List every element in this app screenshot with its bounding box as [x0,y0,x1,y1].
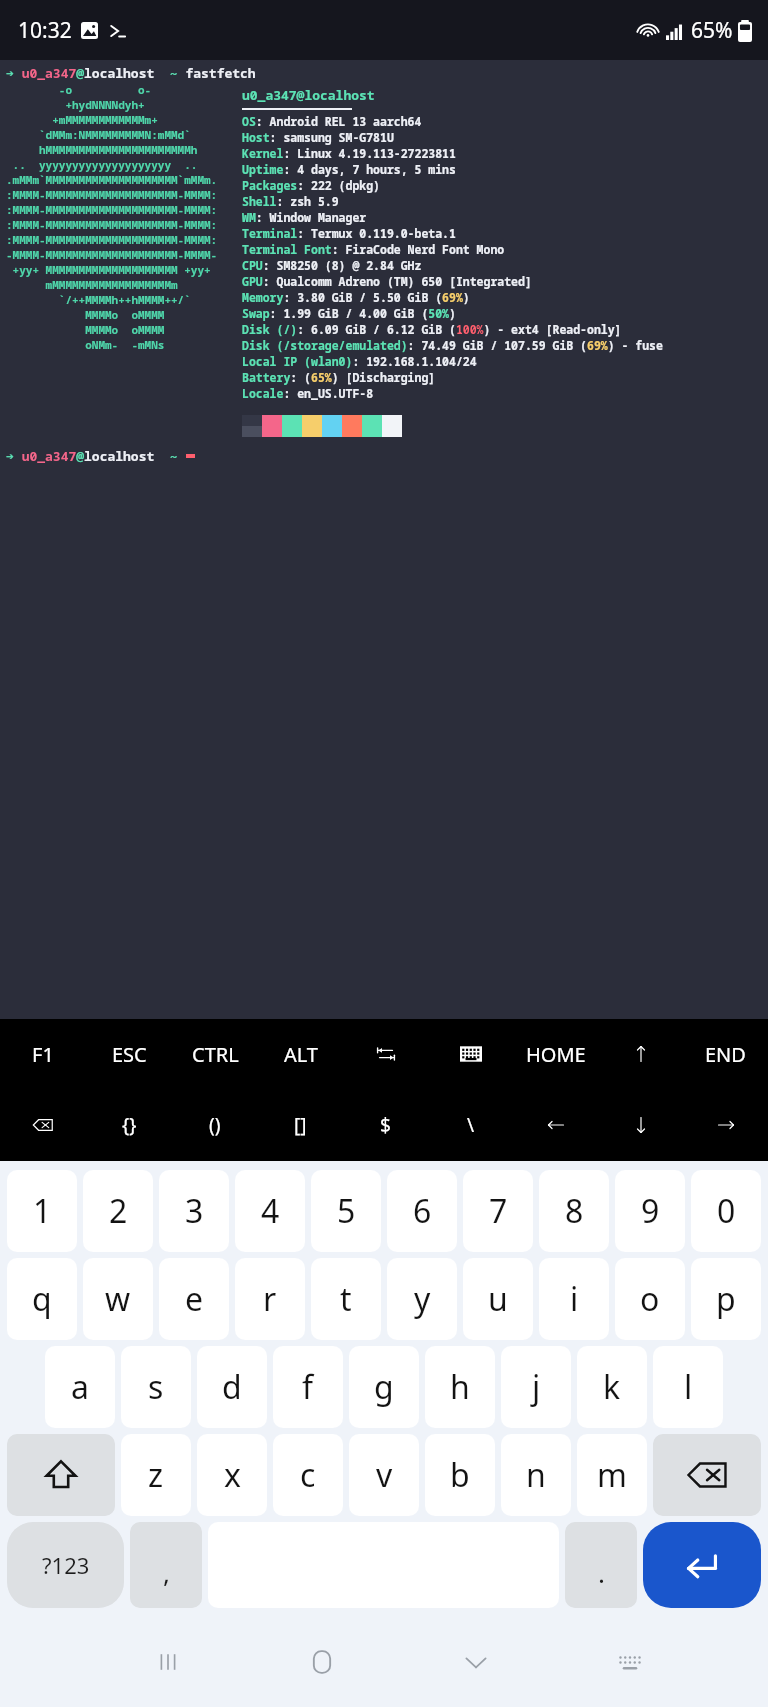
staticText: h [450,1365,470,1409]
button[interactable]: g [349,1346,419,1428]
button[interactable]: Backspace [0,1089,86,1161]
button[interactable]: k [577,1346,647,1428]
button[interactable]: Arrow right [683,1089,768,1161]
button[interactable]: b [425,1434,495,1516]
button[interactable]: 2 [83,1170,153,1252]
button[interactable]: c [273,1434,343,1516]
button[interactable]: q [7,1258,77,1340]
button[interactable]: $ [343,1089,428,1161]
button[interactable]: 1 [7,1170,77,1252]
button[interactable]: 5 [311,1170,381,1252]
button[interactable]: Recents [91,1617,245,1707]
staticText: Terminal Font: FiraCode Nerd Font Mono [242,242,505,258]
button[interactable]: d [197,1346,267,1428]
button[interactable]: w [83,1258,153,1340]
staticText: c [300,1453,316,1497]
staticText: ESC [112,1041,147,1068]
staticText: b [450,1453,470,1497]
staticText: u0_a347@localhost [242,86,375,104]
button[interactable]: Arrow down [598,1089,683,1161]
staticText: `/++MMMMh++hMMMM++/` [6,292,191,307]
staticText: 8 [565,1189,584,1233]
button[interactable]: x [197,1434,267,1516]
staticText: g [374,1365,394,1409]
button[interactable]: Shift [7,1434,115,1516]
staticText: ➔ u0_a347@localhost ~ [6,447,186,465]
button[interactable]: Enter [643,1522,761,1608]
staticText: +yy+ MMMMMMMMMMMMMMMMMMMM +yy+ [6,262,211,277]
button[interactable]: l [653,1346,723,1428]
staticText: 10:32 [18,16,72,45]
button[interactable]: r [235,1258,305,1340]
staticText: 3 [185,1189,204,1233]
staticText: . [598,1555,605,1590]
staticText: $ [380,1112,391,1138]
button[interactable]: HOME [513,1019,598,1089]
button[interactable]: j [501,1346,571,1428]
button[interactable]: t [311,1258,381,1340]
button[interactable]: a [45,1346,115,1428]
button[interactable]: u [463,1258,533,1340]
button[interactable]: ALT [258,1019,343,1089]
button[interactable]: Hide keyboard [399,1617,553,1707]
staticText: 2 [109,1189,128,1233]
staticText: a [71,1365,89,1409]
staticText: `dMMm:NMMMMMMMMMN:mMMd` [6,127,191,142]
button[interactable]: Keyboard [428,1019,513,1089]
staticText: u [488,1277,508,1321]
staticText: Uptime: 4 days, 7 hours, 5 mins [242,162,456,178]
button[interactable]: 8 [539,1170,609,1252]
button[interactable]: 6 [387,1170,457,1252]
staticText: GPU: Qualcomm Adreno (TM) 650 [Integrate… [242,274,532,290]
button[interactable]: z [121,1434,191,1516]
button[interactable]: ESC [86,1019,172,1089]
button[interactable]: e [159,1258,229,1340]
button[interactable]: f [273,1346,343,1428]
staticText: Locale: en_US.UTF-8 [242,386,374,402]
button[interactable]: [] [258,1089,343,1161]
staticText: , [163,1555,170,1590]
button[interactable]: p [691,1258,761,1340]
button[interactable]: CTRL [172,1019,258,1089]
button[interactable]: y [387,1258,457,1340]
button[interactable]: {} [86,1089,172,1161]
button[interactable]: END [683,1019,768,1089]
button[interactable]: m [577,1434,647,1516]
button[interactable]: , [130,1522,202,1608]
button[interactable]: () [172,1089,258,1161]
button[interactable]: 9 [615,1170,685,1252]
button[interactable]: v [349,1434,419,1516]
button[interactable]: Tab [343,1019,428,1089]
staticText: oNMm- -mMNs [6,337,165,352]
button[interactable]: 4 [235,1170,305,1252]
button[interactable]: 0 [691,1170,761,1252]
button[interactable]: Backspace [653,1434,761,1516]
button[interactable]: Home [245,1617,399,1707]
button[interactable]: Arrow left [513,1089,598,1161]
staticText: i [570,1277,579,1321]
button[interactable]: 3 [159,1170,229,1252]
button[interactable]: h [425,1346,495,1428]
staticText: +hydNNNNdyh+ [6,97,145,112]
button[interactable]: 7 [463,1170,533,1252]
button[interactable]: \ [428,1089,513,1161]
button[interactable]: n [501,1434,571,1516]
staticText: ➔ u0_a347@localhost ~ fastfetch [6,64,256,82]
button[interactable]: F1 [0,1019,86,1089]
staticText: OS: Android REL 13 aarch64 [242,114,422,130]
staticText: mMMMMMMMMMMMMMMMMMMm [6,277,178,292]
staticText: MMMMo oMMMM [6,322,165,337]
button[interactable]: Switch keyboard [553,1617,707,1707]
button[interactable]: o [615,1258,685,1340]
button[interactable]: Arrow up [598,1019,683,1089]
button[interactable]: ?123 [7,1522,124,1608]
staticText: n [526,1453,546,1497]
button[interactable]: s [121,1346,191,1428]
button[interactable]: . [565,1522,637,1608]
staticText: CTRL [192,1041,239,1068]
staticText: w [105,1277,131,1321]
staticText: Battery: (65%) [Discharging] [242,370,436,386]
button[interactable]: i [539,1258,609,1340]
staticText: 7 [489,1189,508,1233]
